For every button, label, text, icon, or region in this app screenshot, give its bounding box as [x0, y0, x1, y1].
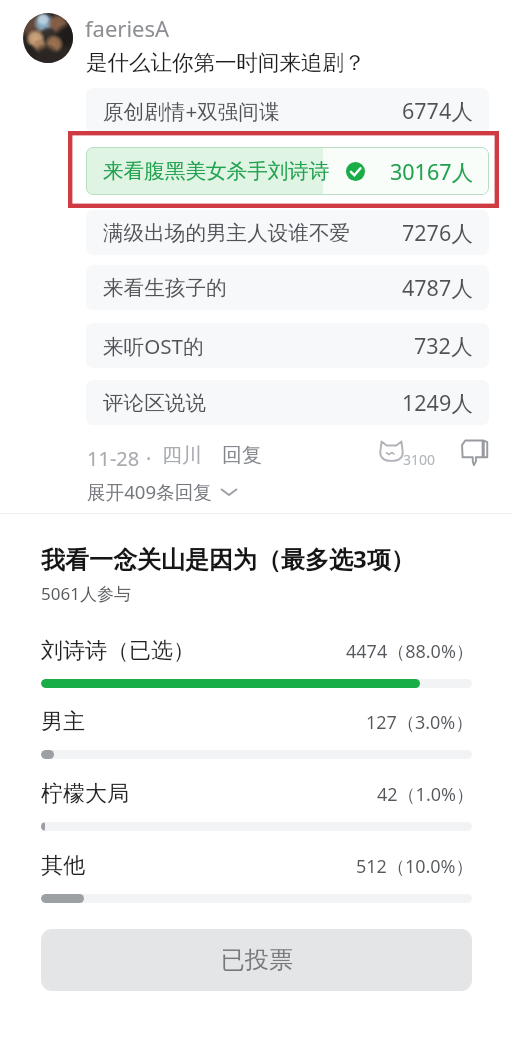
staticText: 已投票	[221, 945, 293, 975]
staticText: 原创剧情+双强间谍	[103, 97, 280, 125]
staticText: 柠檬大局	[41, 780, 129, 808]
button[interactable]: 原创剧情+双强间谍	[86, 88, 489, 133]
staticText: ·	[146, 445, 152, 472]
staticText: 四川	[162, 443, 202, 468]
staticText: 30167人	[390, 157, 473, 186]
staticText: 11-28	[87, 445, 140, 472]
staticText: 7276人	[402, 218, 473, 247]
staticText: 6774人	[402, 96, 473, 125]
staticText: 127（3.0%）	[366, 710, 474, 735]
staticText: 512（10.0%）	[356, 854, 474, 879]
staticText: 来听OST的	[103, 332, 204, 360]
staticText: 4787人	[402, 273, 473, 302]
button[interactable]: Like	[378, 438, 434, 466]
button[interactable]: Avatar	[23, 13, 73, 63]
staticText: 评论区说说	[103, 390, 206, 416]
button[interactable]: 评论区说说	[86, 380, 489, 425]
staticText: 展开409条回复	[87, 479, 212, 504]
staticText: 是什么让你第一时间来追剧？	[86, 49, 366, 76]
staticText: 42（1.0%）	[377, 782, 474, 807]
button[interactable]: Dislike	[460, 437, 489, 466]
button[interactable]: 满级出场的男主人设谁不爱	[86, 210, 489, 255]
staticText: 来看生孩子的	[103, 275, 227, 301]
staticText: 其他	[41, 852, 85, 880]
staticText: 刘诗诗（已选）	[41, 637, 195, 665]
staticText: 4474（88.0%）	[346, 639, 474, 664]
staticText: 回复	[222, 443, 262, 468]
button[interactable]: 来听OST的	[86, 323, 489, 368]
staticText: 满级出场的男主人设谁不爱	[103, 220, 351, 246]
button[interactable]: 来看生孩子的	[86, 265, 489, 310]
button[interactable]: 回复	[222, 443, 262, 468]
button[interactable]: 来看腹黑美女杀手刘诗诗	[86, 147, 489, 195]
staticText: faeriesA	[85, 13, 170, 43]
button[interactable]: 已投票	[41, 929, 472, 991]
staticText: 男主	[41, 708, 85, 736]
staticText: 来看腹黑美女杀手刘诗诗	[103, 158, 330, 184]
staticText: 3100	[403, 450, 436, 469]
staticText: 732人	[414, 331, 473, 360]
staticText: 5061人参与	[41, 582, 131, 605]
button[interactable]: 展开409条回复	[87, 479, 237, 504]
staticText: 我看一念关山是因为（最多选3项）	[41, 542, 415, 575]
staticText: 1249人	[402, 388, 473, 417]
